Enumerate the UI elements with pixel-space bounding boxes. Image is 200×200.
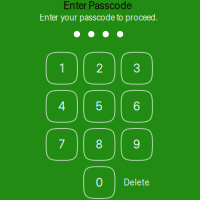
staticText: 5 bbox=[96, 99, 103, 113]
staticText: 4 bbox=[58, 99, 65, 113]
staticText: Enter your passcode to proceed. bbox=[39, 12, 157, 22]
button[interactable]: 8 bbox=[84, 128, 115, 160]
staticText: 8 bbox=[96, 137, 103, 151]
staticText: 0 bbox=[96, 176, 103, 189]
button[interactable]: 5 bbox=[84, 90, 115, 122]
staticText: 1 bbox=[60, 61, 64, 75]
button[interactable]: 9 bbox=[121, 128, 152, 160]
staticText: 2 bbox=[96, 61, 102, 75]
button[interactable]: 1 bbox=[46, 52, 77, 84]
staticText: 7 bbox=[59, 137, 65, 151]
button[interactable]: 2 bbox=[84, 52, 115, 84]
button[interactable]: 4 bbox=[46, 90, 77, 122]
button[interactable]: Delete bbox=[121, 167, 152, 198]
button[interactable]: 3 bbox=[121, 52, 152, 84]
button[interactable]: 7 bbox=[46, 128, 77, 160]
button[interactable]: 6 bbox=[121, 90, 152, 122]
staticText: 6 bbox=[133, 99, 140, 113]
staticText: 9 bbox=[133, 137, 140, 151]
staticText: Enter Passcode bbox=[63, 0, 131, 12]
staticText: 3 bbox=[133, 61, 140, 75]
button[interactable]: 0 bbox=[84, 167, 115, 198]
staticText: Delete bbox=[124, 177, 150, 188]
